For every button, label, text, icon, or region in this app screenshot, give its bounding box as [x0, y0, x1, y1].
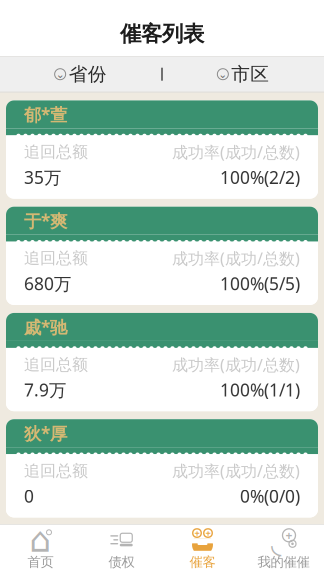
- staticText: 成功率(成功/总数): [172, 460, 300, 481]
- staticText: 追回总额: [24, 142, 88, 162]
- staticText: 追回总额: [24, 461, 88, 481]
- button[interactable]: 债权: [81, 523, 162, 573]
- staticText: 追回总额: [24, 355, 88, 374]
- staticText: 追回总额: [24, 248, 88, 268]
- staticText: +: [194, 527, 199, 539]
- staticText: 我的催催: [257, 554, 309, 570]
- button[interactable]: 戚*驰: [6, 313, 318, 411]
- staticText: 100%(2/2): [220, 166, 300, 189]
- staticText: 市区: [231, 63, 269, 86]
- staticText: +: [205, 527, 210, 539]
- staticText: 催客: [189, 554, 215, 570]
- staticText: 追回总额: [24, 567, 88, 573]
- staticText: 成功率(成功/总数): [172, 566, 300, 573]
- staticText: 郁*萱: [24, 103, 67, 126]
- staticText: 680万: [24, 272, 71, 295]
- staticText: 7.9万: [24, 378, 66, 401]
- staticText: 戚*驰: [24, 315, 67, 338]
- staticText: +: [285, 527, 292, 543]
- staticText: 0: [24, 484, 34, 507]
- staticText: 催客列表: [120, 21, 204, 47]
- staticText: 于*爽: [24, 209, 67, 232]
- staticText: 成功率(成功/总数): [172, 248, 300, 269]
- staticText: ◟: [271, 529, 281, 559]
- button[interactable]: ⌄: [207, 57, 279, 92]
- staticText: ⌂: [29, 520, 51, 559]
- button[interactable]: 于*爽: [6, 207, 318, 305]
- button[interactable]: 郁*萱: [6, 100, 318, 199]
- staticText: 100%(5/5): [220, 272, 300, 295]
- staticText: 35万: [24, 166, 61, 189]
- staticText: 成功率(成功/总数): [172, 354, 300, 375]
- staticText: 狄*厚: [24, 422, 67, 445]
- staticText: 省份: [69, 63, 107, 86]
- staticText: 龚*毅: [24, 528, 67, 551]
- button[interactable]: +: [162, 523, 243, 573]
- staticText: 0%(0/0): [240, 484, 300, 507]
- button[interactable]: ⌄: [45, 57, 117, 92]
- button[interactable]: +: [243, 523, 324, 573]
- staticText: 成功率(成功/总数): [172, 141, 300, 163]
- button[interactable]: 狄*厚: [6, 419, 318, 517]
- button[interactable]: 龚*毅: [6, 525, 318, 573]
- staticText: 首页: [27, 554, 53, 570]
- staticText: ⌄: [218, 68, 227, 80]
- staticText: 债权: [108, 554, 134, 570]
- button[interactable]: ⌂: [0, 523, 81, 573]
- staticText: 100%(1/1): [220, 378, 300, 401]
- staticText: ⌄: [56, 68, 65, 80]
